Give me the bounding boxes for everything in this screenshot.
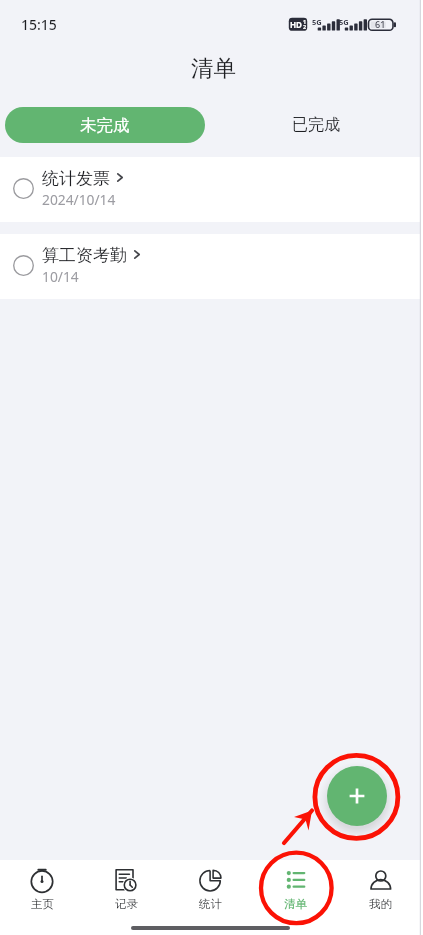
staticText: 10/14 xyxy=(42,267,79,286)
staticText: 61 xyxy=(375,18,386,30)
staticText: 5G xyxy=(312,17,322,27)
button[interactable]: 统计 xyxy=(168,860,253,935)
staticText: 清单 xyxy=(191,54,236,82)
button[interactable]: 主页 xyxy=(0,860,84,935)
staticText: 算工资考勤 xyxy=(42,245,127,266)
staticText: 主页 xyxy=(31,897,54,911)
button[interactable]: 统计发票 xyxy=(0,157,423,222)
staticText: 2 xyxy=(303,23,307,30)
staticText: 统计发票 xyxy=(42,168,110,189)
staticText: HD xyxy=(290,19,302,30)
staticText: 5G xyxy=(339,17,349,27)
staticText: 记录 xyxy=(115,897,138,911)
staticText: 清单 xyxy=(284,897,307,911)
button[interactable]: 未完成 xyxy=(5,107,205,143)
staticText: 2024/10/14 xyxy=(42,190,116,209)
button[interactable]: 算工资考勤 xyxy=(0,234,423,299)
button[interactable]: 我的 xyxy=(338,860,423,935)
staticText: 已完成 xyxy=(292,115,340,135)
staticText: 15:15 xyxy=(21,15,57,34)
staticText: 统计 xyxy=(199,897,222,911)
button[interactable]: 已完成 xyxy=(216,107,416,143)
staticText: 我的 xyxy=(369,897,392,911)
button[interactable]: 记录 xyxy=(84,860,168,935)
button[interactable]: 清单 xyxy=(253,860,338,935)
button[interactable]: 新增清单 xyxy=(327,766,387,826)
staticText: 未完成 xyxy=(80,115,130,136)
staticText: 1 xyxy=(303,18,307,25)
